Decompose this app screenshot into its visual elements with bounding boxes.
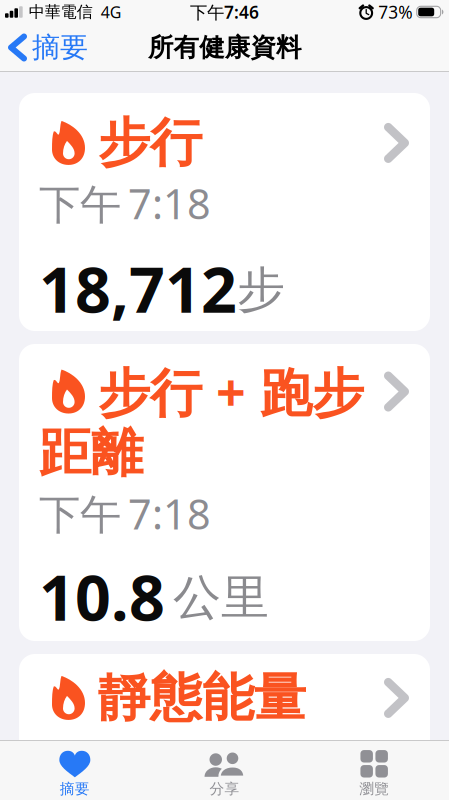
staticText: 步行 — [98, 111, 202, 175]
staticText: 距離 — [39, 421, 143, 485]
button[interactable]: 分享 — [150, 750, 299, 798]
staticText: 分享 — [209, 780, 239, 798]
button[interactable]: 瀏覽 — [299, 750, 449, 798]
staticText: 73% — [378, 0, 412, 23]
staticText: 步行 + 跑步 — [98, 357, 364, 426]
button[interactable]: 摘要 — [0, 750, 150, 798]
button[interactable]: 步行 — [19, 93, 430, 331]
staticText: 步 — [237, 260, 285, 319]
button[interactable]: 返回摘要 — [8, 30, 88, 65]
staticText: 所有健康資料 — [148, 32, 301, 63]
staticText: 公里 — [173, 568, 269, 627]
staticText: 18,712 — [39, 247, 237, 330]
staticText: 摘要 — [60, 780, 90, 798]
staticText: 瀏覽 — [359, 780, 389, 798]
staticText: 靜態能量 — [98, 666, 306, 730]
staticText: 4G — [101, 1, 122, 23]
staticText: 10.8 — [39, 555, 165, 638]
button[interactable]: 步行 + 跑步 — [19, 344, 430, 641]
staticText: 中華電信 — [29, 2, 93, 22]
button[interactable]: 靜態能量 — [19, 654, 430, 800]
staticText: 下午 7:18 — [39, 176, 211, 231]
staticText: 下午 7:18 — [39, 486, 211, 541]
staticText: 摘要 — [32, 30, 88, 65]
staticText: 下午7:46 — [190, 0, 259, 23]
